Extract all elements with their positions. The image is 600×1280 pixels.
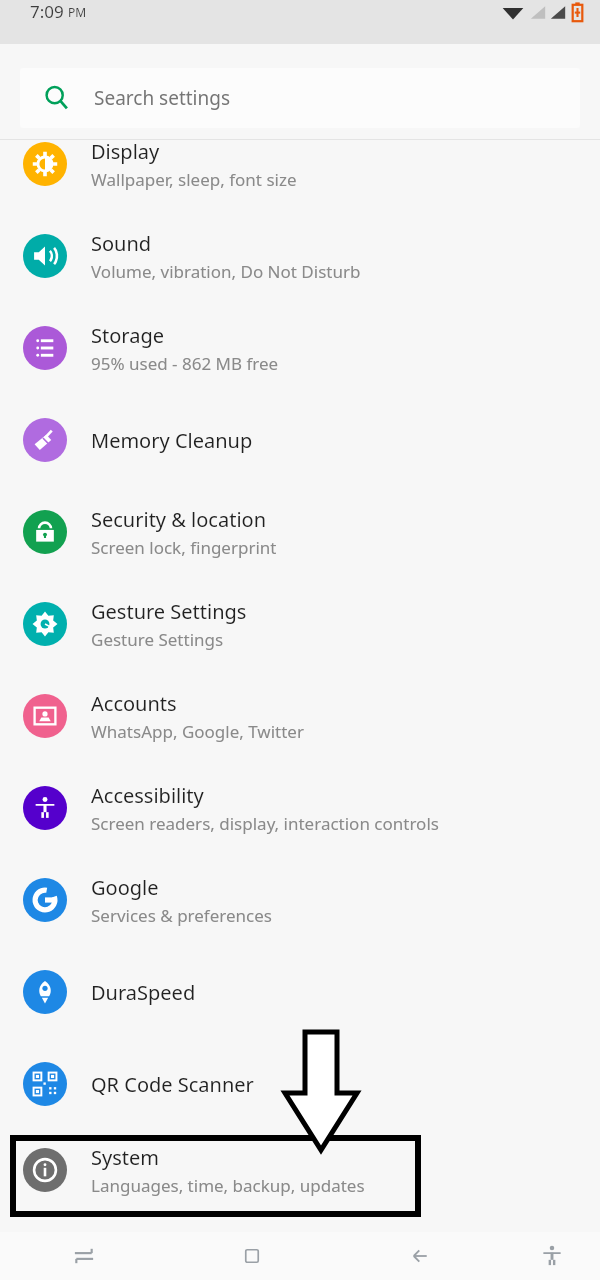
button[interactable]: Display [0,140,600,210]
staticText: Volume, vibration, Do Not Disturb [91,260,361,283]
staticText: System [91,1144,159,1171]
button[interactable]: DuraSpeed [0,946,600,1038]
staticText: Gesture Settings [91,598,247,625]
button[interactable]: System [0,1130,600,1210]
staticText: Accessibility [91,782,204,809]
staticText: 95% used - 862 MB free [91,352,279,375]
button[interactable]: Memory Cleanup [0,394,600,486]
staticText: Display [91,140,160,165]
button[interactable]: Accessibility menu [504,1232,600,1280]
staticText: 7:09 [30,0,64,23]
button[interactable]: Back [336,1232,504,1280]
button[interactable]: Storage [0,302,600,394]
staticText: Languages, time, backup, updates [91,1174,365,1197]
button[interactable]: Search settings [20,68,580,128]
staticText: QR Code Scanner [91,1071,254,1098]
staticText: Search settings [94,85,231,111]
staticText: Screen readers, display, interaction con… [91,812,439,835]
staticText: Security & location [91,506,267,533]
staticText: Screen lock, fingerprint [91,536,277,559]
button[interactable]: QR Code Scanner [0,1038,600,1130]
staticText: PM [68,4,87,20]
staticText: Services & preferences [91,904,272,927]
staticText: Gesture Settings [91,628,224,651]
staticText: Accounts [91,690,177,717]
button[interactable]: Sound [0,210,600,302]
button[interactable]: Home [168,1232,336,1280]
button[interactable]: Security & location [0,486,600,578]
staticText: Wallpaper, sleep, font size [91,168,297,191]
button[interactable]: Google [0,854,600,946]
staticText: Sound [91,230,152,257]
button[interactable]: Accounts [0,670,600,762]
staticText: DuraSpeed [91,979,196,1006]
button[interactable]: Recent apps [0,1232,168,1280]
button[interactable]: Gesture Settings [0,578,600,670]
staticText: WhatsApp, Google, Twitter [91,720,304,743]
staticText: Google [91,874,159,901]
button[interactable]: Accessibility [0,762,600,854]
staticText: Memory Cleanup [91,427,253,454]
staticText: Storage [91,322,164,349]
